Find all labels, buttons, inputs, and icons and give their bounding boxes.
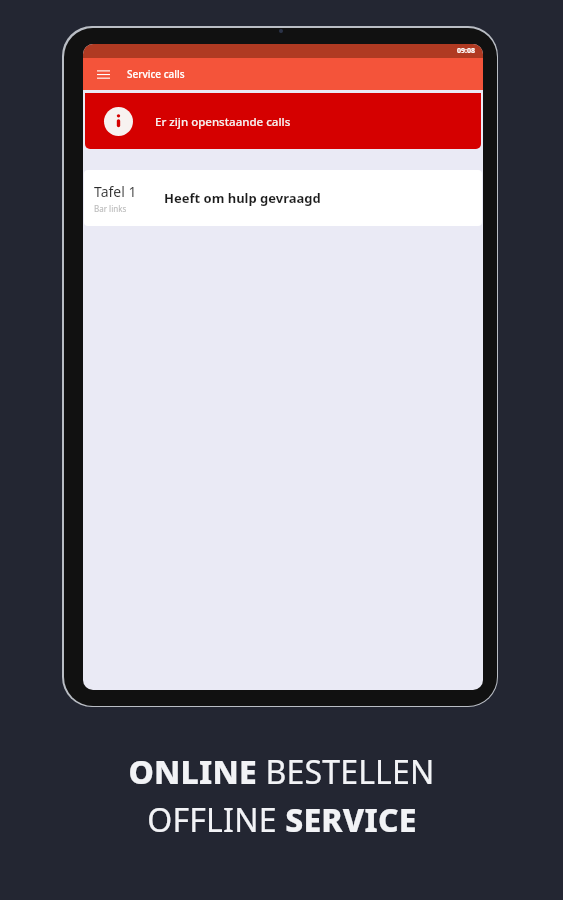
button[interactable]: Er zijn openstaande calls bbox=[85, 93, 481, 149]
button[interactable]: Open navigation menu bbox=[91, 62, 115, 86]
staticText: 09:08 bbox=[457, 46, 475, 56]
staticText: Service calls bbox=[127, 67, 185, 81]
staticText: Er zijn openstaande calls bbox=[155, 114, 291, 130]
staticText: Heeft om hulp gevraagd bbox=[164, 189, 321, 207]
staticText: OFFLINE SERVICE bbox=[147, 798, 417, 842]
staticText: Tafel 1 bbox=[94, 182, 137, 201]
staticText: ONLINE BESTELLEN bbox=[128, 750, 435, 794]
staticText: Bar links bbox=[94, 203, 127, 214]
button[interactable]: Tafel 1 bbox=[84, 170, 482, 226]
